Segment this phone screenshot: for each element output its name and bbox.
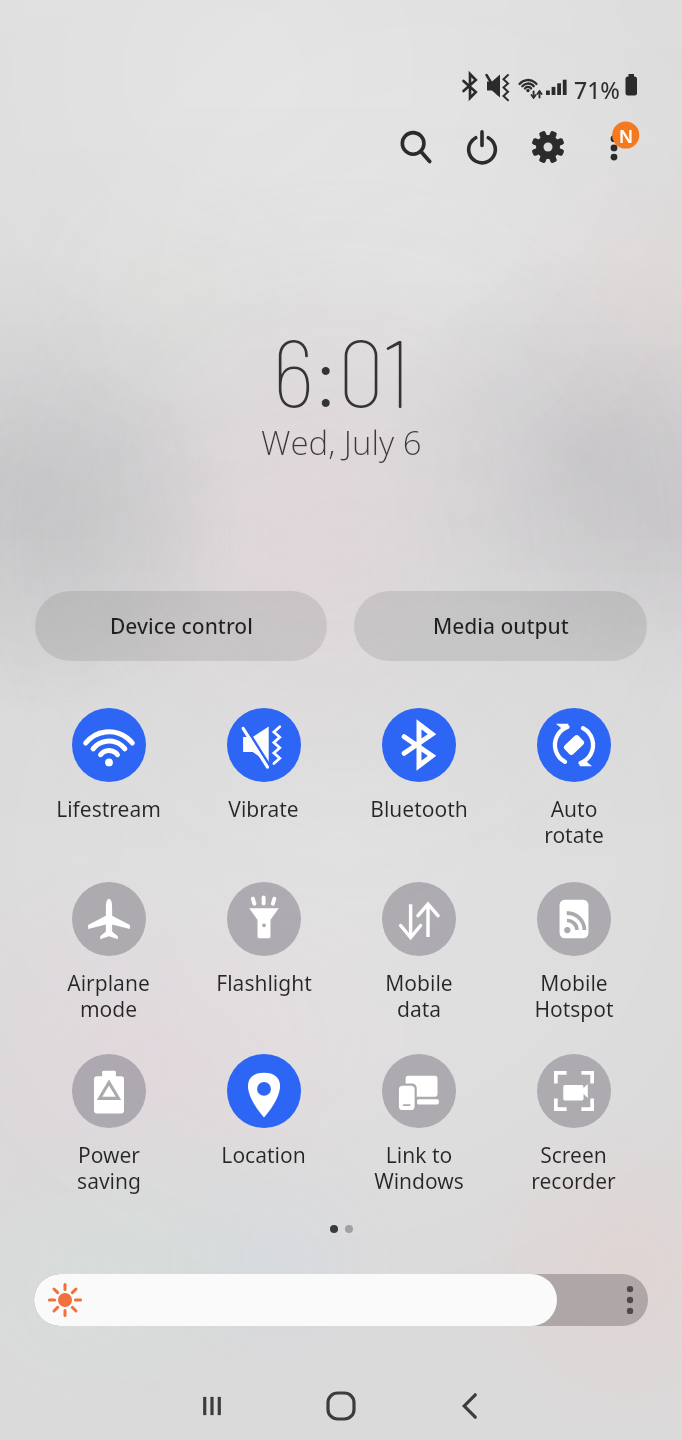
staticText: Vibrate bbox=[228, 795, 299, 824]
staticText: Link to Windows bbox=[374, 1141, 464, 1196]
button[interactable]: Mobile data bbox=[341, 882, 496, 1024]
staticText: Mobile Hotspot bbox=[534, 969, 614, 1024]
staticText: Location bbox=[221, 1141, 306, 1170]
staticText: N bbox=[619, 124, 633, 149]
staticText: Airplane mode bbox=[67, 969, 150, 1024]
button[interactable]: Power off bbox=[449, 114, 515, 180]
button[interactable]: Location bbox=[186, 1054, 341, 1170]
staticText: Mobile data bbox=[385, 969, 453, 1024]
staticText: Media output bbox=[433, 612, 569, 641]
button[interactable]: Home bbox=[306, 1372, 376, 1440]
button[interactable]: Media output bbox=[354, 591, 647, 661]
button[interactable]: Auto rotate bbox=[496, 708, 651, 850]
button[interactable]: Recents bbox=[177, 1372, 247, 1440]
staticText: Device control bbox=[110, 612, 253, 641]
button[interactable]: Screen recorder bbox=[496, 1054, 651, 1196]
button[interactable]: Lifestream bbox=[31, 708, 186, 824]
button[interactable]: Mobile Hotspot bbox=[496, 882, 651, 1024]
staticText: Bluetooth bbox=[370, 795, 468, 824]
button[interactable]: Device control bbox=[35, 591, 327, 661]
staticText: 6:01 bbox=[272, 314, 411, 427]
button[interactable]: Link to Windows bbox=[341, 1054, 496, 1196]
button[interactable]: Power saving bbox=[31, 1054, 186, 1196]
button[interactable] bbox=[34, 1274, 648, 1326]
staticText: Auto rotate bbox=[544, 795, 604, 850]
button[interactable]: Bluetooth bbox=[341, 708, 496, 824]
staticText: Wed, July 6 bbox=[261, 420, 422, 465]
button[interactable]: More options bbox=[581, 114, 647, 180]
staticText: Lifestream bbox=[56, 795, 161, 824]
staticText: Flashlight bbox=[216, 969, 312, 998]
staticText: 71% bbox=[574, 74, 620, 105]
button[interactable]: Settings bbox=[515, 114, 581, 180]
button[interactable]: Vibrate bbox=[186, 708, 341, 824]
staticText: Screen recorder bbox=[531, 1141, 616, 1196]
button[interactable]: Flashlight bbox=[186, 882, 341, 998]
staticText: Power saving bbox=[77, 1141, 141, 1196]
button[interactable]: Airplane mode bbox=[31, 882, 186, 1024]
button[interactable]: Back bbox=[435, 1372, 505, 1440]
button[interactable]: Search bbox=[383, 114, 449, 180]
